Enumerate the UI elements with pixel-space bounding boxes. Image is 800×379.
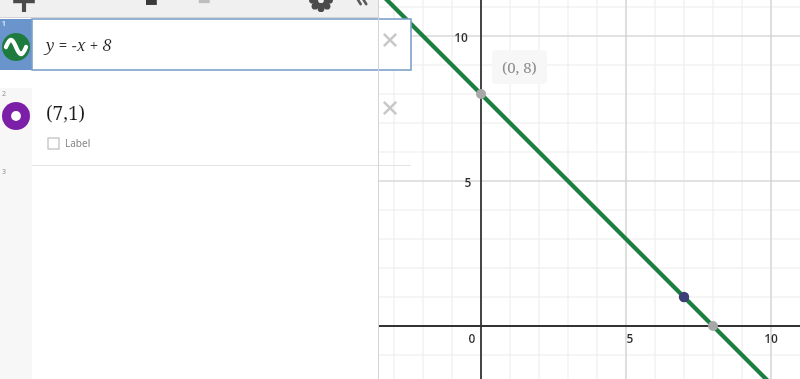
- button[interactable]: Delete expression: [379, 97, 401, 119]
- staticText: 10: [761, 330, 781, 346]
- button[interactable]: (0, 8): [492, 50, 547, 84]
- staticText: 1: [2, 19, 7, 29]
- button[interactable]: 2: [0, 88, 379, 166]
- button[interactable]: Settings: [308, 0, 334, 7]
- button[interactable]: 3: [0, 166, 379, 379]
- staticText: (7,1): [46, 100, 86, 126]
- staticText: 5: [458, 174, 478, 190]
- staticText: (0, 8): [502, 57, 537, 77]
- button[interactable]: Delete expression: [379, 29, 401, 51]
- button[interactable]: 1: [0, 19, 379, 70]
- staticText: 10: [451, 29, 471, 45]
- staticText: y = −x + 8: [46, 34, 112, 56]
- staticText: 3: [2, 167, 7, 177]
- staticText: 0: [462, 330, 482, 346]
- button[interactable]: Label: [48, 136, 91, 150]
- button[interactable]: Redo: [192, 0, 216, 10]
- button[interactable]: Undo: [140, 0, 164, 10]
- staticText: 2: [2, 89, 7, 99]
- staticText: Label: [65, 136, 91, 150]
- button[interactable]: Collapse panel: [346, 0, 374, 8]
- staticText: 5: [620, 330, 640, 346]
- button[interactable]: Add expression: [6, 0, 42, 8]
